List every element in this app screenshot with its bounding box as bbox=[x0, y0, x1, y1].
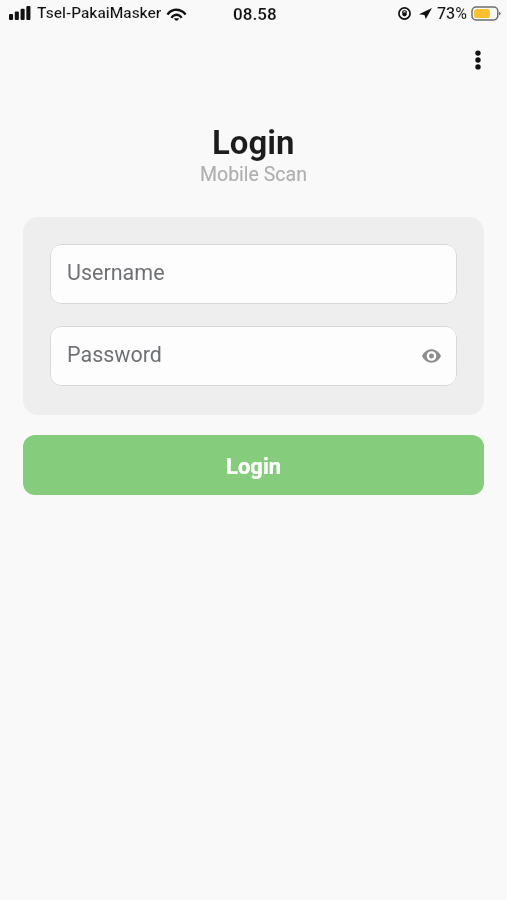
staticText: Mobile Scan bbox=[200, 163, 307, 186]
staticText: Tsel-PakaiMasker bbox=[37, 4, 162, 22]
staticText: 08.58 bbox=[233, 4, 277, 24]
staticText: Login bbox=[226, 454, 282, 480]
button[interactable]: More options bbox=[459, 41, 497, 79]
button[interactable]: Username bbox=[50, 244, 457, 304]
button[interactable]: Login bbox=[23, 435, 484, 495]
button[interactable]: Show password bbox=[416, 341, 446, 371]
staticText: Username bbox=[67, 260, 165, 285]
staticText: Password bbox=[67, 342, 162, 367]
button[interactable]: Password bbox=[50, 326, 457, 386]
staticText: 73% bbox=[437, 4, 467, 23]
staticText: Login bbox=[212, 123, 295, 162]
